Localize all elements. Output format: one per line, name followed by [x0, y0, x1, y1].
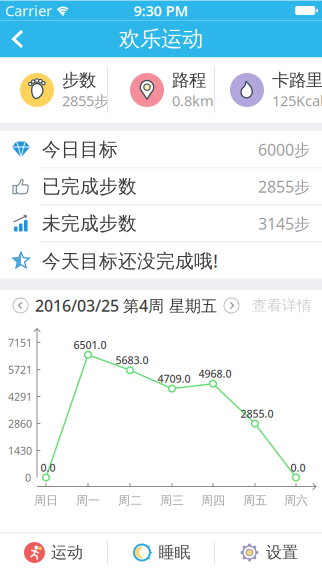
button[interactable]: 设置 — [215, 533, 322, 571]
staticText: 2855步 — [62, 91, 109, 110]
staticText: 周一 — [76, 493, 100, 508]
staticText: 已完成步数 — [42, 175, 137, 198]
button[interactable]: 睡眠 — [108, 533, 214, 571]
staticText: 4709.0 — [157, 371, 190, 386]
staticText: 今日目标 — [42, 138, 118, 161]
staticText: 设置 — [266, 543, 298, 562]
staticText: 周三 — [160, 493, 184, 508]
staticText: 5721 — [8, 362, 32, 377]
staticText: 2860 — [8, 416, 32, 431]
staticText: 0.8km — [172, 91, 214, 110]
staticText: 今天目标还没完成哦! — [42, 248, 218, 273]
button[interactable]: 运动 — [0, 533, 107, 571]
button[interactable]: Back — [0, 27, 26, 51]
staticText: 步数 — [62, 70, 96, 91]
staticText: 9:30 PM — [133, 1, 188, 20]
button[interactable]: Next day — [223, 297, 240, 314]
staticText: 周日 — [34, 493, 58, 508]
staticText: 周五 — [243, 493, 267, 508]
staticText: 7151 — [8, 335, 32, 350]
staticText: 6000步 — [258, 139, 310, 160]
staticText: 125Kcal — [272, 91, 322, 110]
staticText: 运动 — [51, 543, 83, 562]
button[interactable]: Previous day — [0, 297, 29, 314]
staticText: 2016/03/25 第4周 星期五 — [35, 295, 217, 316]
staticText: 5683.0 — [115, 353, 148, 367]
staticText: 6501.0 — [73, 338, 106, 352]
button[interactable]: 查看详情 — [252, 296, 322, 314]
staticText: 睡眠 — [158, 543, 190, 562]
staticText: 周四 — [201, 493, 225, 508]
staticText: Carrier — [5, 1, 52, 20]
staticText: 周二 — [118, 493, 142, 508]
staticText: 0.0 — [290, 460, 305, 475]
staticText: 欢乐运动 — [119, 26, 203, 52]
staticText: 周六 — [284, 493, 308, 508]
staticText: 3145步 — [258, 213, 310, 234]
staticText: 4291 — [8, 389, 32, 404]
staticText: 4968.0 — [198, 367, 231, 381]
staticText: 2855步 — [258, 176, 310, 197]
staticText: 查看详情 — [252, 296, 312, 314]
staticText: 路程 — [172, 70, 206, 91]
staticText: 2855.0 — [240, 406, 273, 421]
staticText: 0.0 — [40, 460, 55, 475]
staticText: 0 — [25, 470, 31, 485]
staticText: 卡路里 — [272, 70, 322, 91]
staticText: 1430 — [8, 443, 32, 458]
staticText: 未完成步数 — [42, 212, 137, 235]
